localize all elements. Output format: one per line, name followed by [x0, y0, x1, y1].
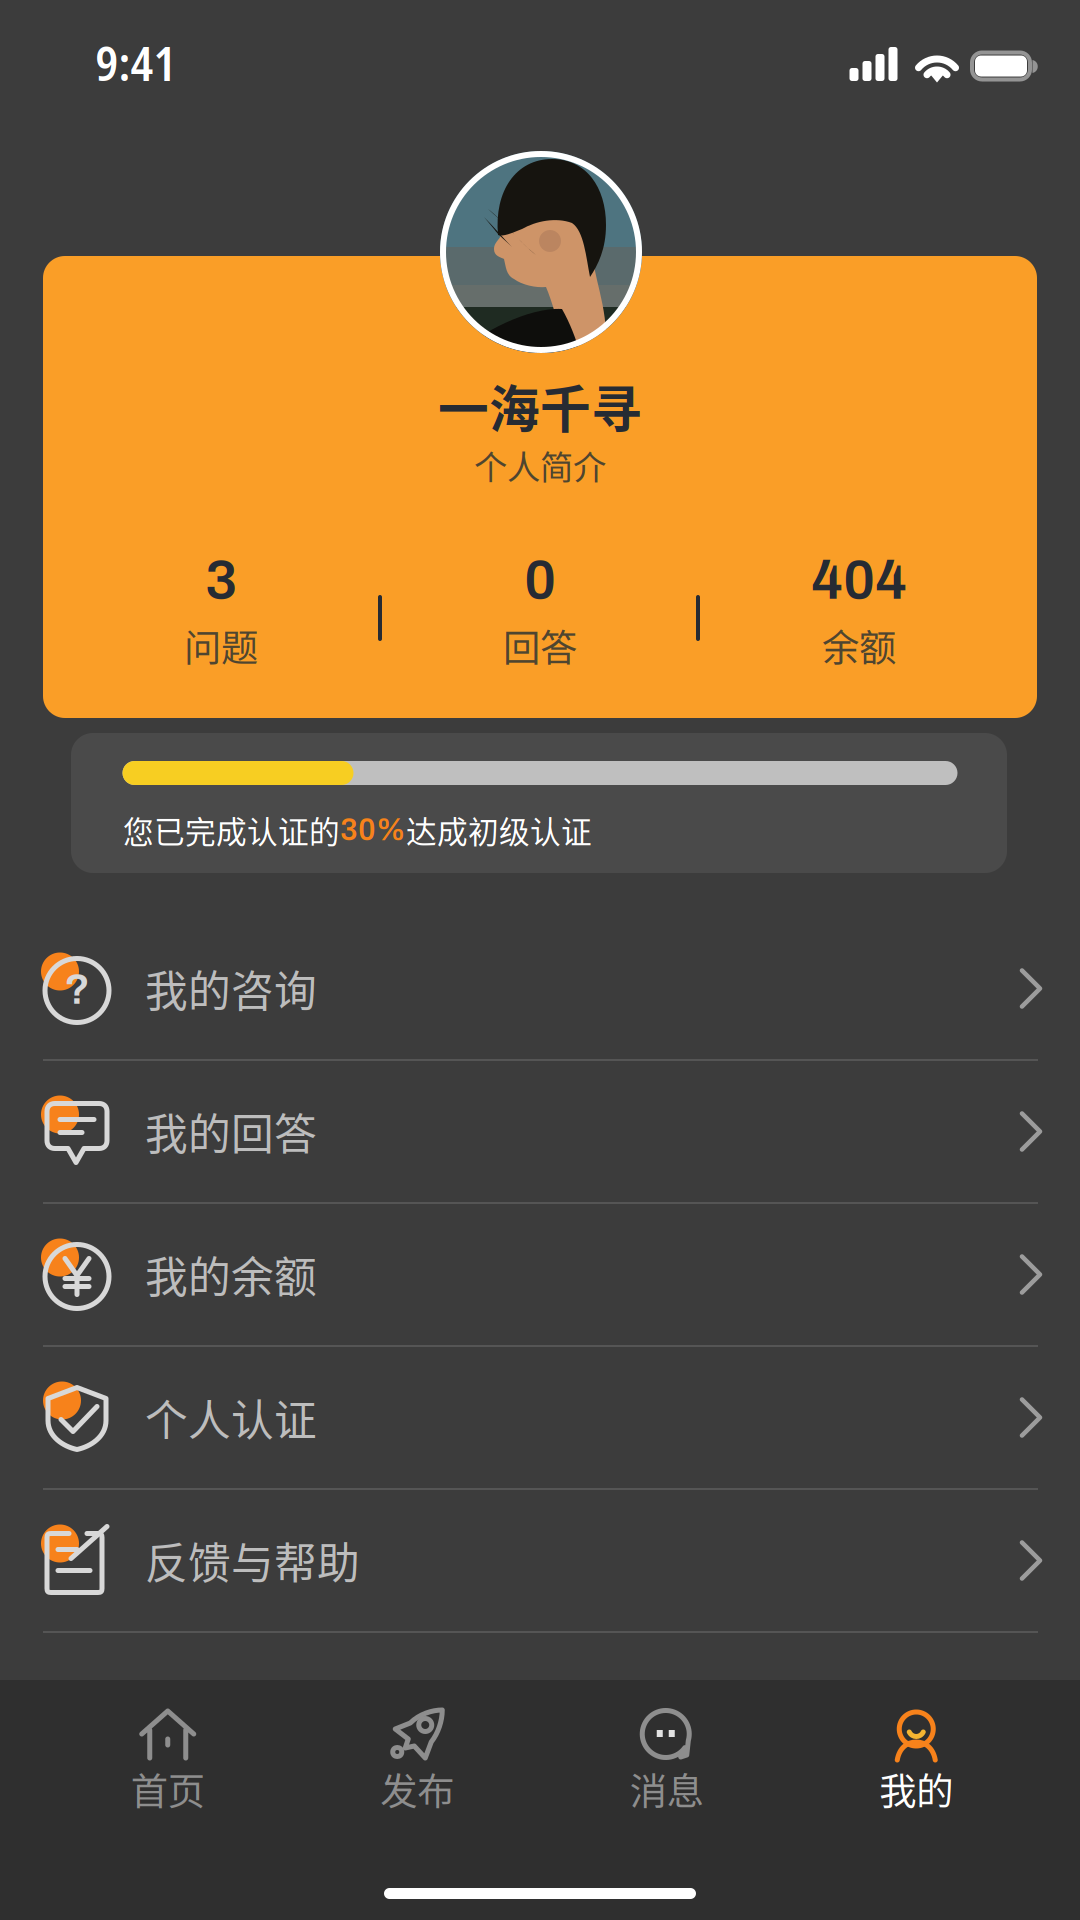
staticText: 一海千寻 — [438, 369, 642, 443]
staticText: 3 — [205, 549, 237, 610]
staticText: ? — [64, 966, 90, 1013]
button[interactable]: ? — [0, 918, 1080, 1059]
staticText: 首页 — [131, 1762, 205, 1816]
button[interactable]: 个人认证 — [0, 1347, 1080, 1488]
staticText: 9:41 — [95, 31, 176, 95]
button[interactable]: 消息 — [542, 1680, 791, 1840]
staticText: 回答 — [503, 618, 577, 672]
staticText: 我的余额 — [145, 1244, 317, 1305]
staticText: 反馈与帮助 — [145, 1530, 360, 1591]
button[interactable]: 发布 — [292, 1680, 542, 1840]
staticText: 404 — [811, 549, 907, 610]
button[interactable]: 我的余额 — [0, 1204, 1080, 1345]
staticText: 30% — [340, 813, 406, 847]
staticText: 您已完成认证的 — [123, 808, 340, 852]
staticText: 发布 — [380, 1762, 454, 1816]
staticText: 我的咨询 — [145, 958, 317, 1019]
staticText: 达成初级认证 — [406, 808, 592, 852]
staticText: 消息 — [630, 1762, 704, 1816]
button[interactable]: 反馈与帮助 — [0, 1490, 1080, 1631]
staticText: 问题 — [184, 618, 258, 672]
staticText: 个人认证 — [145, 1387, 317, 1448]
staticText: 我的回答 — [145, 1101, 317, 1162]
staticText: 0 — [524, 549, 556, 610]
staticText: 我的 — [879, 1762, 953, 1816]
staticText: 余额 — [822, 618, 896, 672]
button[interactable]: 首页 — [43, 1680, 292, 1840]
staticText: 个人简介 — [474, 441, 606, 489]
button[interactable]: 我的 — [791, 1680, 1041, 1840]
button[interactable]: 我的回答 — [0, 1061, 1080, 1202]
